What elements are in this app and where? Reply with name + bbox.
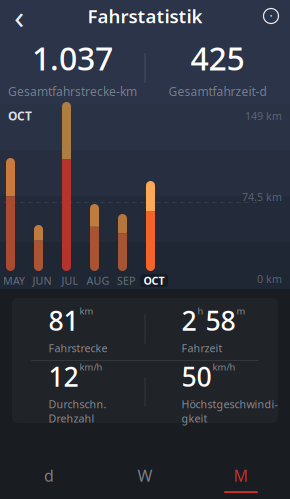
button[interactable]: d: [1, 459, 97, 499]
staticText: 0 km: [257, 272, 282, 286]
button[interactable]: M: [193, 459, 289, 499]
button[interactable]: History: [252, 1, 290, 31]
button[interactable]: AUG: [84, 274, 112, 287]
staticText: m: [236, 305, 245, 317]
staticText: Fahrstrecke: [48, 341, 107, 355]
staticText: 12: [48, 359, 78, 394]
staticText: MAY: [3, 273, 25, 288]
staticText: 1.037: [32, 37, 113, 79]
staticText: ·: [269, 8, 272, 24]
button[interactable]: OCT: [140, 274, 168, 287]
button[interactable]: JUN: [28, 274, 56, 287]
button[interactable]: W: [97, 459, 193, 499]
staticText: km/h: [212, 361, 235, 373]
button[interactable]: Back: [0, 1, 38, 31]
staticText: 425: [190, 37, 244, 79]
staticText: M: [233, 465, 248, 486]
staticText: km: [79, 305, 93, 317]
staticText: JUN: [32, 273, 51, 288]
staticText: 74.5 km: [242, 190, 282, 204]
staticText: JUL: [61, 273, 78, 288]
button[interactable]: SEP: [112, 274, 140, 287]
staticText: OCT: [8, 108, 32, 124]
button[interactable]: MAY: [0, 274, 28, 287]
staticText: Fahrstatistik: [87, 4, 202, 28]
staticText: 2: [181, 303, 196, 338]
staticText: W: [137, 465, 152, 486]
staticText: 81: [48, 303, 78, 338]
staticText: km/h: [79, 361, 102, 373]
staticText: Fahrzeit: [181, 341, 222, 355]
staticText: h: [197, 305, 203, 317]
staticText: AUG: [86, 273, 109, 288]
staticText: 50: [181, 359, 211, 394]
staticText: d: [44, 465, 54, 486]
staticText: ‹: [14, 0, 24, 38]
staticText: 149 km: [245, 109, 282, 123]
staticText: Durchschn. Drehzahl: [48, 397, 106, 425]
staticText: OCT: [143, 273, 164, 288]
staticText: 58: [205, 303, 235, 338]
staticText: Gesamtfahrstrecke-km: [8, 83, 137, 99]
staticText: Gesamtfahrzeit-d: [168, 83, 266, 99]
button[interactable]: JUL: [56, 274, 84, 287]
staticText: SEP: [117, 273, 135, 288]
staticText: Höchstgeschwindigkeit: [181, 397, 277, 425]
